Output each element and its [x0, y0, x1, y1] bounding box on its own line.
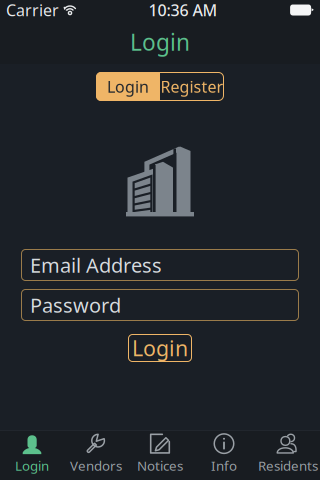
- staticText: Password: [30, 292, 121, 318]
- button[interactable]: Residents: [256, 431, 320, 480]
- staticText: Login: [130, 27, 190, 57]
- button[interactable]: Info: [192, 431, 256, 480]
- button[interactable]: Vendors: [64, 431, 128, 480]
- staticText: Email Address: [30, 252, 162, 278]
- staticText: Residents: [258, 457, 318, 474]
- staticText: Vendors: [70, 457, 122, 474]
- button[interactable]: Login: [96, 72, 160, 101]
- button[interactable]: Login: [0, 431, 64, 480]
- staticText: Login: [107, 76, 149, 97]
- staticText: Login: [15, 457, 49, 474]
- staticText: Register: [160, 76, 223, 97]
- staticText: 10:36 AM: [149, 0, 218, 21]
- staticText: Info: [211, 457, 237, 474]
- button[interactable]: Notices: [128, 431, 192, 480]
- button[interactable]: Register: [160, 72, 224, 101]
- staticText: Login: [132, 334, 188, 362]
- button[interactable]: Login: [128, 334, 192, 362]
- staticText: Notices: [137, 457, 183, 474]
- staticText: Carrier: [6, 0, 59, 21]
